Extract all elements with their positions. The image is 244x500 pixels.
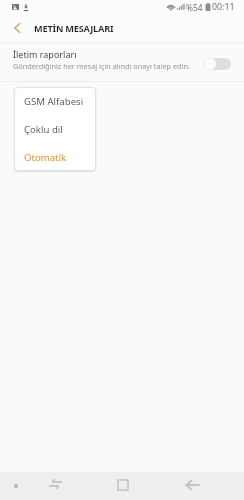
button[interactable]: GSM Alfabesi [14,87,96,115]
staticText: İletim raporları [13,48,77,60]
staticText: Otomatik [24,151,67,164]
button[interactable]: İletim raporları [0,43,244,81]
staticText: Çoklu dil [24,123,63,136]
button[interactable]: Çoklu dil [14,115,96,143]
staticText: METİN MESAJLARI [34,22,114,35]
staticText: Gönderdiğiniz her mesaj için alındı onay… [13,61,190,71]
button[interactable]: Back [184,477,200,493]
button[interactable]: Otomatik [14,143,96,171]
button[interactable]: More options [8,478,24,494]
button[interactable]: Home [115,477,131,493]
button[interactable]: Recent apps [47,476,63,492]
staticText: 00:11 [212,1,235,13]
button[interactable]: Back [0,14,34,42]
staticText: GSM Alfabesi [24,95,84,108]
staticText: %54 [186,2,203,13]
button[interactable]: Delivery reports toggle [204,58,231,70]
